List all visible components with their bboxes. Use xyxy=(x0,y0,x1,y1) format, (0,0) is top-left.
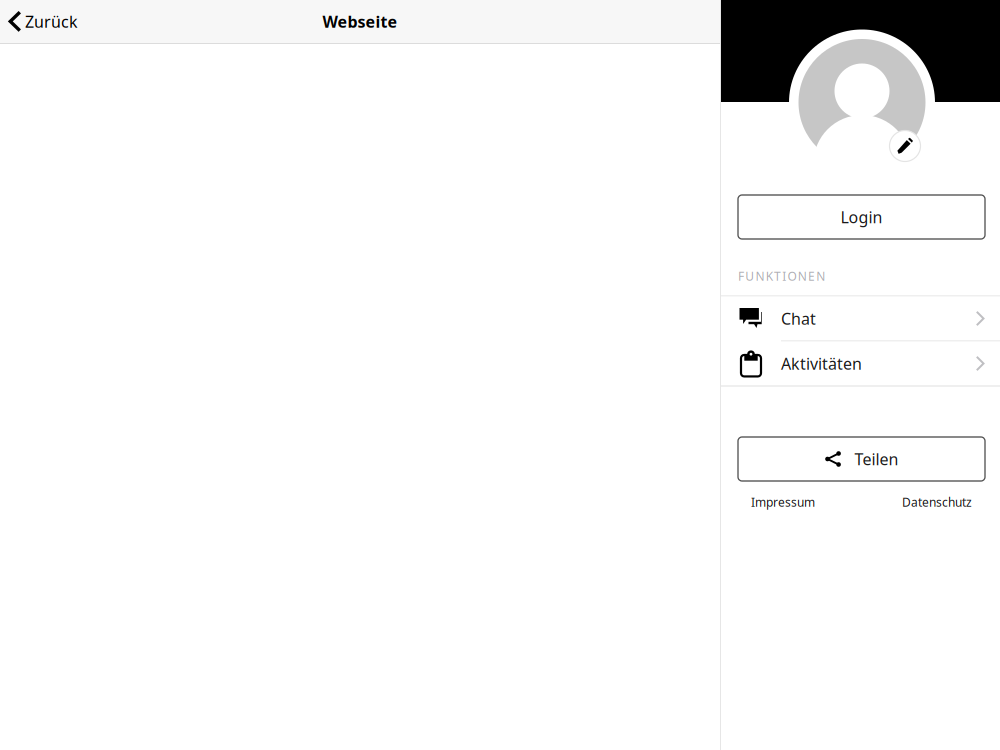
button[interactable]: Impressum xyxy=(751,494,815,510)
staticText: Teilen xyxy=(854,448,898,470)
staticText: Zurück xyxy=(25,11,78,32)
staticText: Chat xyxy=(781,308,816,329)
staticText: Aktivitäten xyxy=(781,353,862,374)
button[interactable]: Teilen xyxy=(738,437,985,481)
button[interactable]: Datenschutz xyxy=(902,494,972,510)
staticText: Datenschutz xyxy=(902,494,972,510)
staticText: FUNKTIONEN xyxy=(738,268,825,284)
button[interactable]: Profilbild bearbeiten xyxy=(889,130,920,161)
button[interactable]: Chat xyxy=(721,296,1000,340)
staticText: Webseite xyxy=(322,11,397,32)
button[interactable]: Login xyxy=(738,195,985,239)
staticText: Impressum xyxy=(751,494,815,510)
button[interactable]: Zurück xyxy=(0,0,88,43)
staticText: Login xyxy=(840,206,882,228)
button[interactable]: Aktivitäten xyxy=(721,341,1000,385)
